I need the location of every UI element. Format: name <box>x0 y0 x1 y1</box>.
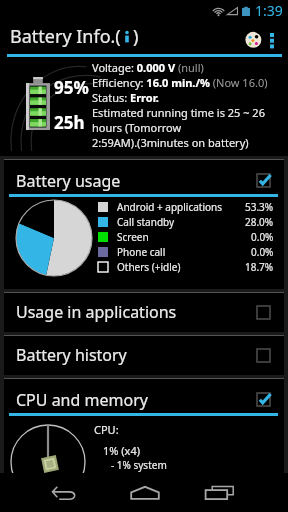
staticText: 95% <box>54 76 89 99</box>
button[interactable]: Usage in applications <box>4 292 284 332</box>
staticText: Efficiency: 16.0 min./% (Now 16.0) <box>92 75 268 90</box>
staticText: Battery usage <box>16 170 121 192</box>
staticText: 53.3% <box>245 200 274 214</box>
staticText: Estimated running time is 25 ~ 26 hours … <box>92 105 265 150</box>
staticText: 0.0% <box>251 245 274 259</box>
staticText: 0.0% <box>251 230 274 244</box>
staticText: Screen <box>117 230 149 244</box>
staticText: 1:39 <box>255 1 283 20</box>
button[interactable]: Back <box>28 473 100 512</box>
staticText: Call standby <box>117 215 175 229</box>
staticText: 28.0% <box>245 215 274 229</box>
button[interactable]: CPU and memory <box>4 378 284 473</box>
button[interactable]: Recent apps <box>184 473 256 512</box>
staticText: Android + applications <box>117 200 223 214</box>
staticText: Voltage: 0.000 V (null) <box>92 60 204 75</box>
button[interactable]: More options <box>263 22 281 52</box>
staticText: 25h <box>54 111 85 134</box>
button[interactable]: Battery history <box>4 335 284 375</box>
staticText: CPU and memory <box>16 389 148 411</box>
staticText: Usage in applications <box>16 301 177 323</box>
staticText: 1% (x4) <box>103 443 141 458</box>
staticText: Others (+idle) <box>117 260 181 274</box>
staticText: CPU: <box>94 422 119 437</box>
staticText: Battery history <box>16 344 127 366</box>
staticText: Status: Error. <box>92 90 159 105</box>
button[interactable]: Home <box>109 473 181 512</box>
button[interactable]: Battery usage <box>4 159 284 289</box>
staticText: Phone call <box>117 245 166 259</box>
button[interactable]: Change theme <box>238 22 262 52</box>
staticText: 18.7% <box>245 260 274 274</box>
staticText: ) <box>133 24 139 49</box>
staticText: Battery Info.( <box>10 24 121 49</box>
staticText: - 1% system <box>111 458 167 472</box>
